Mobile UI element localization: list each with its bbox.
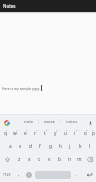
staticText: l [89, 143, 91, 150]
staticText: 3 [26, 128, 28, 131]
button[interactable]: d [25, 140, 35, 153]
button[interactable] [82, 167, 96, 182]
button[interactable]: a [5, 140, 15, 153]
button[interactable]: y [50, 127, 60, 140]
button[interactable]: t [40, 127, 50, 140]
staticText: Here is my sample note [2, 86, 40, 91]
button[interactable]: g [45, 140, 55, 153]
staticText: note [24, 118, 34, 124]
button[interactable]: Here is my sample note [0, 14, 96, 114]
button[interactable]: i [70, 127, 80, 140]
button[interactable] [84, 115, 96, 127]
staticText: more [44, 118, 55, 124]
staticText: g [49, 143, 52, 150]
button[interactable]: z [14, 153, 24, 166]
staticText: h [59, 143, 62, 150]
button[interactable]: q [0, 127, 10, 140]
button[interactable]: , [14, 167, 24, 182]
button[interactable]: r [30, 127, 40, 140]
staticText: 4 [36, 128, 38, 131]
button[interactable]: . [72, 167, 82, 182]
button[interactable]: b [54, 153, 64, 166]
button[interactable]: more [39, 115, 60, 127]
staticText: n [68, 156, 71, 163]
staticText: v [48, 156, 51, 163]
staticText: , [18, 171, 20, 178]
button[interactable]: c [34, 153, 44, 166]
staticText: Notes [3, 3, 16, 9]
staticText: j [69, 143, 71, 150]
button[interactable]: j [65, 140, 75, 153]
button[interactable]: x [24, 153, 34, 166]
button[interactable]: notes [61, 115, 84, 127]
staticText: u [64, 130, 67, 137]
staticText: r [34, 130, 36, 137]
staticText: z [18, 156, 21, 163]
staticText: o [84, 130, 87, 137]
button[interactable]: o [80, 127, 90, 140]
staticText: f [39, 143, 41, 150]
staticText: ?123 [3, 172, 11, 177]
staticText: p [92, 130, 95, 137]
staticText: 6 [56, 128, 58, 131]
staticText: . [76, 171, 78, 178]
staticText: e [24, 130, 27, 137]
button[interactable] [0, 115, 13, 127]
staticText: q [4, 130, 7, 137]
button[interactable]: k [75, 140, 85, 153]
staticText: 2 [16, 128, 18, 131]
staticText: a [9, 143, 12, 150]
button[interactable]: m [74, 153, 84, 166]
staticText: 5 [46, 128, 48, 131]
button[interactable] [34, 167, 72, 182]
staticText: k [79, 143, 82, 150]
staticText: x [28, 156, 31, 163]
button[interactable]: e [20, 127, 30, 140]
button[interactable]: h [55, 140, 65, 153]
button[interactable]: l [85, 140, 95, 153]
button[interactable] [84, 153, 96, 166]
button[interactable]: v [44, 153, 54, 166]
button[interactable]: ?123 [0, 167, 14, 182]
button[interactable] [24, 167, 34, 182]
staticText: s [19, 143, 22, 150]
button[interactable]: note [13, 115, 38, 127]
button[interactable]: f [35, 140, 45, 153]
staticText: 1 [6, 128, 8, 131]
staticText: 0 [92, 128, 94, 131]
staticText: c [38, 156, 41, 163]
staticText: notes [66, 118, 78, 124]
staticText: 9 [86, 128, 88, 131]
staticText: i [74, 130, 76, 137]
button[interactable]: s [15, 140, 25, 153]
staticText: m [77, 156, 82, 163]
staticText: w [13, 130, 17, 137]
button[interactable]: n [64, 153, 74, 166]
button[interactable]: w [10, 127, 20, 140]
button[interactable]: p [90, 127, 96, 140]
button[interactable] [0, 153, 14, 166]
staticText: 7 [66, 128, 68, 131]
staticText: t [44, 130, 46, 137]
staticText: y [54, 130, 57, 137]
staticText: b [58, 156, 61, 163]
staticText: d [29, 143, 32, 150]
staticText: 8 [76, 128, 78, 131]
button[interactable]: u [60, 127, 70, 140]
